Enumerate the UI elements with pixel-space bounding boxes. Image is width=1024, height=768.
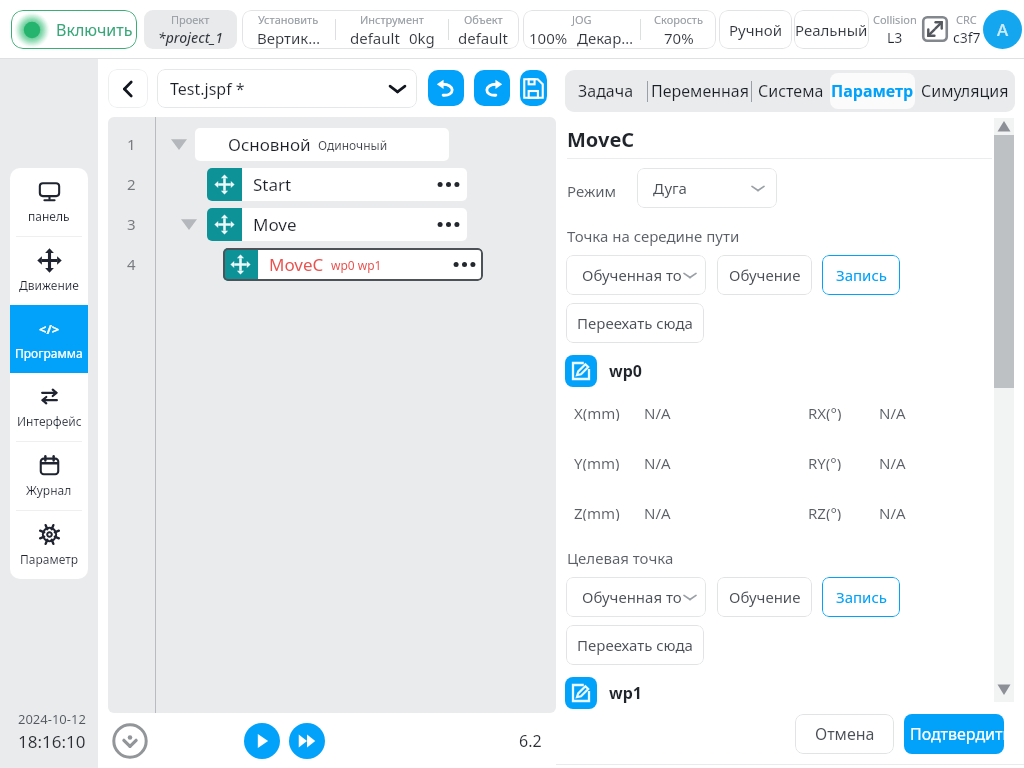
button[interactable]: Обучение	[717, 255, 812, 295]
staticText: Параметр	[831, 80, 914, 102]
button[interactable]: панель	[10, 168, 88, 236]
staticText: Реальный	[795, 20, 868, 40]
staticText: Скорость	[654, 12, 703, 27]
staticText: </>	[39, 320, 60, 338]
staticText: N/A	[879, 503, 906, 521]
button[interactable]: Edit wp0	[565, 355, 597, 387]
staticText: Система	[758, 80, 824, 102]
button[interactable]: Play	[244, 723, 280, 759]
staticText: 1	[127, 134, 136, 154]
button[interactable]: Undo	[428, 70, 464, 106]
button[interactable]: Параметр	[830, 73, 915, 109]
staticText: default	[458, 28, 508, 48]
staticText: N/A	[644, 453, 671, 471]
button[interactable]: Edit wp1	[565, 677, 597, 709]
staticText: 18:16:10	[18, 730, 86, 753]
staticText: Переехать сюда	[577, 635, 693, 655]
button[interactable]: Симуляция	[915, 73, 1014, 109]
staticText: 100%	[529, 28, 568, 48]
staticText: Установить	[258, 12, 319, 27]
button[interactable]: Интерфейс	[10, 373, 88, 441]
button[interactable]: Отмена	[795, 714, 894, 754]
staticText: Инструмент	[360, 12, 424, 27]
button[interactable]: Запись	[822, 577, 900, 617]
staticText: RX(°)	[808, 403, 842, 421]
button[interactable]: Переменная	[648, 73, 751, 109]
staticText: N/A	[644, 403, 671, 421]
button[interactable]: JOG	[523, 10, 716, 49]
button[interactable]: Журнал	[10, 442, 88, 510]
staticText: Основной	[228, 133, 311, 156]
staticText: Запись	[836, 265, 887, 285]
button[interactable]: More options	[429, 208, 467, 241]
staticText: Обучение	[729, 587, 801, 607]
staticText: 6.2	[519, 730, 542, 752]
button[interactable]: Обученная точ	[566, 255, 706, 295]
button[interactable]: Основной	[195, 128, 449, 161]
button[interactable]: Обученная точ	[566, 577, 706, 617]
staticText: MoveC	[269, 253, 324, 276]
staticText: 70%	[664, 28, 694, 48]
button[interactable]: Установить	[242, 10, 519, 49]
staticText: Move	[253, 213, 297, 236]
button[interactable]: Задача	[565, 73, 647, 109]
button[interactable]: Запись	[822, 255, 900, 295]
staticText: RY(°)	[808, 453, 842, 471]
button[interactable]: Проект	[144, 10, 237, 49]
button[interactable]: Обучение	[717, 577, 812, 617]
staticText: Start	[253, 173, 292, 196]
button[interactable]: Move	[207, 208, 467, 241]
staticText: Параметр	[20, 551, 79, 567]
button[interactable]: Redo	[474, 70, 510, 106]
button[interactable]: Start	[207, 168, 467, 201]
button[interactable]: Account	[983, 10, 1022, 49]
button[interactable]: Система	[752, 73, 830, 109]
button[interactable]: MoveC	[223, 248, 483, 281]
staticText: Целевая точка	[567, 548, 674, 568]
staticText: Журнал	[26, 482, 72, 498]
staticText: wp1	[609, 682, 642, 704]
staticText: Режим	[567, 181, 617, 201]
staticText: Вертик…	[257, 28, 321, 48]
staticText: Одиночный	[318, 137, 388, 153]
button[interactable]: More options	[429, 168, 467, 201]
button[interactable]: Переехать сюда	[566, 303, 704, 343]
button[interactable]: Fast forward	[289, 723, 325, 759]
button[interactable]: </>	[10, 305, 88, 373]
staticText: Ручной	[729, 20, 782, 40]
button[interactable]: Движение	[10, 237, 88, 305]
staticText: Запись	[836, 587, 887, 607]
button[interactable]: Fullscreen	[921, 15, 949, 43]
button[interactable]: Back	[108, 69, 148, 108]
staticText: JOG	[572, 12, 592, 27]
button[interactable]: Реальный	[794, 10, 869, 49]
staticText: Переменная	[651, 80, 749, 102]
button[interactable]: More options	[445, 248, 483, 281]
staticText: c3f7	[953, 28, 981, 47]
button[interactable]: Включить	[11, 10, 137, 49]
staticText: wp0	[609, 360, 642, 382]
staticText: Декар…	[577, 28, 634, 48]
staticText: wp0 wp1	[331, 257, 382, 273]
staticText: панель	[28, 208, 70, 224]
button[interactable]: Save	[520, 70, 547, 106]
staticText: Симуляция	[921, 80, 1009, 102]
button[interactable]: Test.jspf *	[157, 69, 417, 108]
staticText: Переехать сюда	[577, 313, 693, 333]
staticText: Точка на середине пути	[567, 226, 740, 246]
staticText: Программа	[15, 345, 83, 361]
staticText: A	[997, 18, 1009, 41]
staticText: N/A	[879, 403, 906, 421]
button[interactable]: Подтвердить	[904, 714, 1004, 754]
staticText: Отмена	[815, 723, 875, 745]
staticText: Задача	[578, 80, 634, 102]
staticText: Test.jspf *	[170, 78, 389, 100]
button[interactable]: Параметр	[10, 511, 88, 579]
staticText: Подтвердить	[910, 723, 1004, 745]
button[interactable]: Ручной	[719, 10, 792, 49]
staticText: CRC	[956, 12, 977, 27]
button[interactable]: Collapse all	[112, 723, 148, 759]
staticText: 0kg	[409, 28, 435, 48]
button[interactable]: Дуга	[637, 168, 777, 208]
button[interactable]: Переехать сюда	[566, 625, 704, 665]
